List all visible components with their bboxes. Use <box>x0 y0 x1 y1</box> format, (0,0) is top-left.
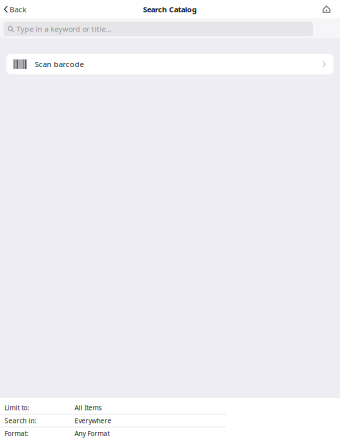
staticText: Limit to: <box>4 403 29 412</box>
staticText: Back <box>9 4 26 14</box>
staticText: Everywhere <box>74 416 111 425</box>
staticText: Scan barcode <box>35 59 84 69</box>
staticText: Search Catalog <box>143 4 197 14</box>
staticText: Format: <box>4 429 28 438</box>
button[interactable]: Back <box>0 0 32 18</box>
button[interactable]: Home <box>317 0 340 18</box>
button[interactable]: Search in: <box>0 414 340 427</box>
staticText: Type in a keyword or title... <box>16 24 111 34</box>
button[interactable]: Limit to: <box>0 402 340 414</box>
staticText: Search in: <box>4 416 36 425</box>
button[interactable]: Type in a keyword or title... <box>3 22 313 36</box>
button[interactable]: Format: <box>0 427 340 439</box>
staticText: Any Format <box>74 429 109 438</box>
button[interactable]: Scan barcode <box>6 54 333 74</box>
staticText: All Items <box>74 403 101 412</box>
